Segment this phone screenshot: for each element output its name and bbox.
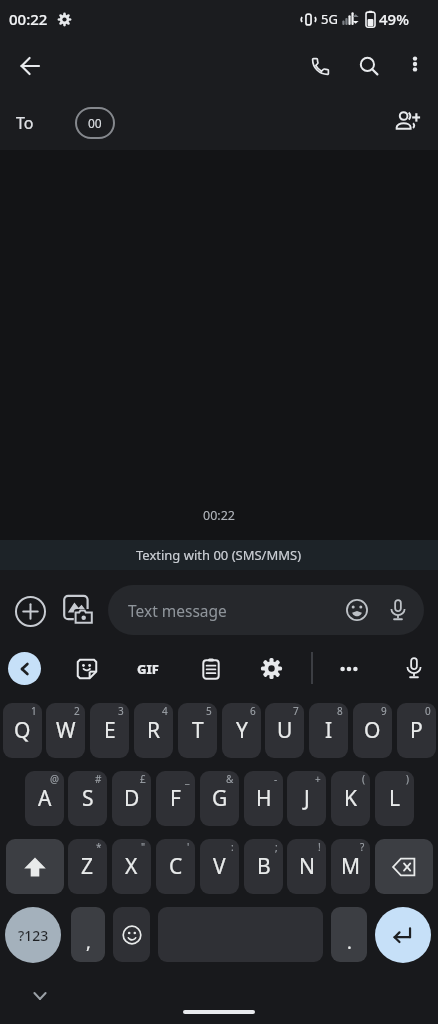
button[interactable]: L [375,771,414,826]
button[interactable]: , [71,907,105,962]
staticText: P [410,716,423,745]
button[interactable]: F [156,771,195,826]
staticText: # [95,772,102,786]
staticText: Text message [128,600,227,621]
staticText: GIF [137,660,159,678]
button[interactable]: J [287,771,326,826]
button[interactable]: O [353,703,392,758]
button[interactable] [70,652,104,686]
staticText: J [304,784,310,813]
button[interactable] [8,44,52,88]
staticText: Y [236,716,248,745]
button[interactable] [343,596,371,624]
staticText: V [213,852,226,881]
staticText: Q [14,716,31,745]
staticText: N [299,852,315,881]
button[interactable]: C [156,839,195,894]
staticText: 8 [337,704,343,718]
staticText: 9 [381,704,387,718]
staticText: S [82,784,94,813]
staticText: 7 [293,704,299,718]
button[interactable]: . [331,907,367,962]
button[interactable] [8,652,41,685]
staticText: C [169,852,183,881]
button[interactable]: V [200,839,239,894]
staticText: ! [318,840,321,854]
button[interactable]: G [200,771,239,826]
button[interactable] [397,651,431,685]
staticText: U [277,716,293,745]
button[interactable]: A [25,771,64,826]
staticText: W [56,716,76,745]
button[interactable] [194,652,228,686]
button[interactable] [254,651,288,685]
staticText: 5G [321,10,338,28]
button[interactable]: K [331,771,370,826]
button[interactable]: E [90,703,129,758]
staticText: 6 [250,704,256,718]
staticText: 00:22 [9,9,48,29]
staticText: Z [81,852,94,881]
button[interactable]: X [112,839,151,894]
staticText: " [141,840,146,854]
button[interactable] [113,907,150,962]
button[interactable] [56,587,100,631]
staticText: 0 [425,704,431,718]
button[interactable]: S [68,771,107,826]
staticText: ? [360,840,365,854]
button[interactable]: Z [68,839,107,894]
button[interactable] [347,44,391,88]
button[interactable]: Y [222,703,261,758]
staticText: B [257,852,271,881]
button[interactable] [384,596,412,624]
button[interactable] [298,44,342,88]
staticText: 49% [379,9,409,29]
staticText: F [170,784,181,813]
staticText: + [315,772,321,786]
staticText: 4 [162,704,168,718]
staticText: , [86,930,91,955]
button[interactable]: I [309,703,348,758]
staticText: ?123 [18,926,49,945]
button[interactable]: T [178,703,217,758]
button[interactable]: D [112,771,151,826]
button[interactable]: H [244,771,283,826]
button[interactable] [8,589,52,633]
button[interactable]: M [331,839,370,894]
button[interactable] [375,839,433,894]
staticText: M [341,852,361,881]
button[interactable]: R [134,703,173,758]
staticText: O [364,716,381,745]
button[interactable]: B [244,839,283,894]
button[interactable]: ?123 [5,907,61,963]
staticText: ; [275,840,278,854]
staticText: ) [406,772,409,786]
button[interactable] [386,101,428,143]
button[interactable]: U [265,703,304,758]
staticText: 00:22 [203,507,235,524]
staticText: @ [50,772,59,786]
button[interactable] [6,839,64,894]
staticText: L [389,784,401,813]
button[interactable] [332,652,366,686]
staticText: I [325,716,333,745]
button[interactable]: W [46,703,85,758]
staticText: D [124,784,140,813]
staticText: ' [187,840,190,854]
button[interactable]: N [287,839,326,894]
button[interactable] [395,44,435,84]
staticText: 1 [31,704,37,718]
staticText: To [16,112,34,134]
staticText: E [104,716,116,745]
button[interactable]: Q [3,703,42,758]
staticText: & [226,772,234,786]
button[interactable]: Text message [108,585,424,635]
button[interactable]: 00 [75,107,115,139]
staticText: 5 [206,704,212,718]
button[interactable] [375,907,431,963]
button[interactable]: P [397,703,436,758]
staticText: Texting with 00 (SMS/MMS) [136,546,302,564]
button[interactable]: GIF [128,652,168,686]
staticText: _ [185,772,190,786]
